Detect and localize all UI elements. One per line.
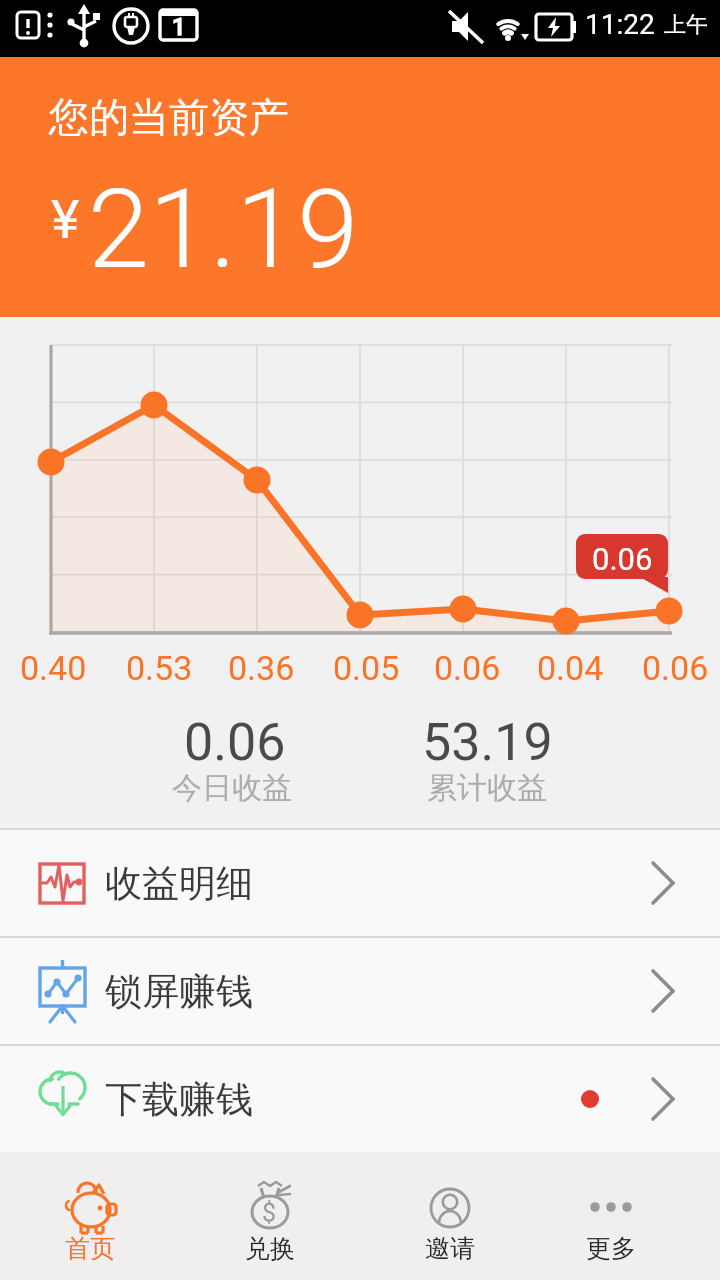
staticText: 0.06 bbox=[592, 541, 653, 577]
staticText: 0.53 bbox=[126, 648, 193, 688]
button[interactable]: 兑换 bbox=[180, 1152, 360, 1280]
staticText: 更多 bbox=[586, 1233, 636, 1264]
staticText: 首页 bbox=[65, 1233, 115, 1264]
staticText: 您的当前资产 bbox=[49, 92, 289, 142]
button[interactable]: 更多 bbox=[540, 1152, 720, 1280]
staticText: ¥ bbox=[51, 188, 80, 251]
staticText: 上午 bbox=[664, 11, 708, 39]
staticText: 0.04 bbox=[537, 648, 604, 688]
staticText: 0.40 bbox=[20, 648, 87, 688]
staticText: $ bbox=[262, 1198, 277, 1227]
staticText: 0.06 bbox=[642, 648, 709, 688]
button[interactable]: 邀请 bbox=[360, 1152, 540, 1280]
staticText: 11:22 bbox=[585, 8, 655, 41]
button[interactable]: 首页 bbox=[0, 1152, 180, 1280]
staticText: 今日收益 bbox=[172, 769, 292, 807]
staticText: 0.36 bbox=[228, 648, 295, 688]
button[interactable]: 锁屏赚钱 bbox=[0, 938, 720, 1044]
button[interactable]: 收益明细 bbox=[0, 830, 720, 936]
staticText: 21.19 bbox=[88, 165, 359, 294]
staticText: 0.05 bbox=[333, 648, 400, 688]
staticText: 0.06 bbox=[434, 648, 501, 688]
staticText: 累计收益 bbox=[427, 769, 547, 807]
staticText: 兑换 bbox=[245, 1233, 295, 1264]
staticText: 1 bbox=[172, 13, 186, 41]
staticText: 收益明细 bbox=[105, 860, 253, 907]
staticText: 邀请 bbox=[425, 1233, 475, 1264]
staticText: 锁屏赚钱 bbox=[105, 968, 253, 1015]
staticText: 53.19 bbox=[422, 712, 553, 773]
staticText: 下载赚钱 bbox=[105, 1076, 253, 1123]
staticText: 0.06 bbox=[184, 712, 286, 773]
button[interactable]: 下载赚钱 bbox=[0, 1046, 720, 1152]
